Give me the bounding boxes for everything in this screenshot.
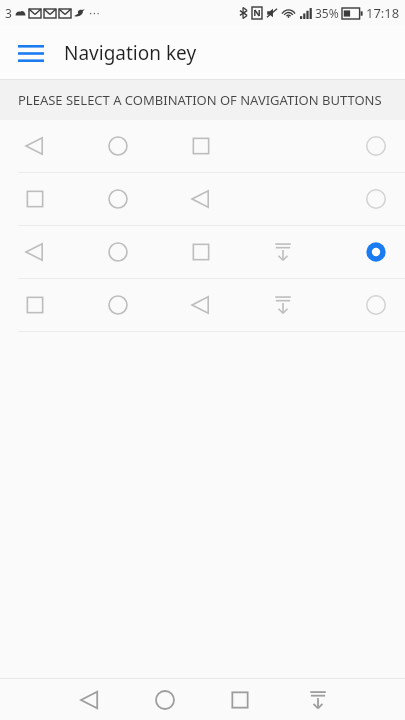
staticText: 3 bbox=[5, 5, 12, 21]
staticText: 35% bbox=[315, 5, 339, 21]
button[interactable]: Back bbox=[70, 680, 110, 720]
button[interactable]: Open navigation menu bbox=[10, 32, 52, 74]
button[interactable] bbox=[0, 279, 405, 332]
staticText: PLEASE SELECT A COMBINATION OF NAVIGATIO… bbox=[18, 91, 382, 109]
button[interactable] bbox=[0, 120, 405, 173]
button[interactable] bbox=[0, 173, 405, 226]
staticText: Navigation key bbox=[64, 40, 197, 66]
staticText: 17:18 bbox=[366, 4, 400, 22]
button[interactable]: Recent apps bbox=[220, 680, 260, 720]
staticText: ⋯ bbox=[89, 7, 100, 20]
button[interactable]: Hide keyboard bbox=[298, 680, 338, 720]
button[interactable]: Home bbox=[145, 680, 185, 720]
button[interactable] bbox=[0, 226, 405, 279]
